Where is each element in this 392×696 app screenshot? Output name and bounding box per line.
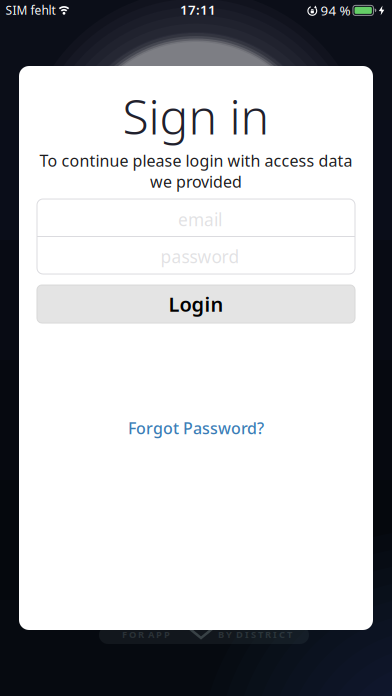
textField[interactable]: password [37, 240, 355, 270]
staticText: To continue please login with access dat… [39, 150, 352, 171]
staticText: B Y D I S T R I C T [218, 628, 292, 641]
staticText: Sign in [122, 84, 269, 148]
staticText: email [178, 208, 222, 231]
staticText: F O R A P P [122, 628, 170, 641]
staticText: SIM fehlt [5, 2, 55, 18]
staticText: we provided [150, 171, 242, 192]
textField[interactable]: email [37, 203, 355, 233]
button[interactable]: Login [37, 285, 355, 323]
staticText: 17:11 [180, 1, 216, 18]
staticText: Forgot Password? [128, 417, 264, 439]
staticText: password [160, 245, 239, 268]
staticText: Login [168, 291, 223, 317]
staticText: 94 % [320, 1, 350, 19]
button[interactable]: Forgot Password? [128, 417, 264, 439]
